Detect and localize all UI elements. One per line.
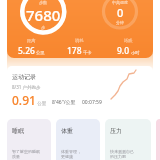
staticText: 运动记录 [12,73,36,81]
staticText: 分钟 [116,20,124,25]
button[interactable]: 运动记录 [7,66,153,111]
staticText: 0.91 [12,92,36,108]
button[interactable]: 距离 [7,38,55,57]
staticText: 智了解您的睡眠 质量 [12,149,40,159]
staticText: 体重 [61,127,73,135]
staticText: 消耗 [75,38,84,43]
staticText: 体重管理， 更健康 [61,149,81,159]
staticText: 步数 [39,0,47,5]
staticText: 178 [67,45,82,57]
staticText: 睡眠 [12,127,24,135]
staticText: 快来测测自己 的压力吧 [110,149,134,159]
staticText: 9.0 [117,45,130,57]
staticText: 8'46"/公里 [52,99,76,106]
staticText: 步 [41,25,45,30]
staticText: 活跃 [124,38,133,43]
button[interactable]: 压力 [105,119,151,160]
button[interactable]: 消耗 [55,38,104,57]
button[interactable]: 睡眠 [7,119,51,160]
staticText: 5.26 [18,45,35,57]
staticText: 距离 [27,38,36,43]
staticText: 中高强度 [112,0,128,5]
staticText: 8/31 户外跑步 [12,84,41,90]
staticText: 00:07:59 [82,99,102,106]
button[interactable]: 体重 [56,119,100,160]
staticText: 公里 [36,100,47,106]
button[interactable]: 活跃 [104,38,153,57]
staticText: 小时 [130,50,140,56]
staticText: 压力 [110,127,122,135]
staticText: 公里 [35,50,45,56]
staticText: 7680 [26,5,61,25]
staticText: 千卡 [82,50,92,56]
button[interactable] [156,119,160,160]
staticText: 0 [117,5,124,20]
